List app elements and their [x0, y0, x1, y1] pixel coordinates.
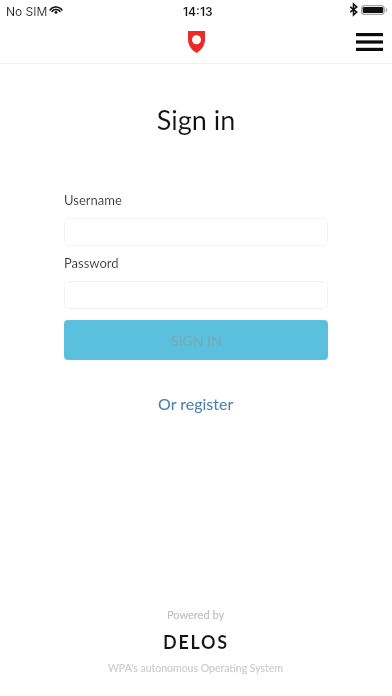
staticText: WPA's autonomous Operating System — [108, 662, 284, 675]
button[interactable]: SIGN IN — [64, 320, 328, 360]
button[interactable]: Open menu — [351, 24, 387, 60]
button[interactable] — [64, 281, 328, 309]
staticText: Sign in — [0, 103, 392, 135]
staticText: Password — [64, 255, 119, 271]
staticText: Powered by — [167, 608, 225, 621]
staticText: SIGN IN — [171, 332, 222, 349]
button[interactable] — [64, 218, 328, 246]
button[interactable]: Or register — [64, 394, 328, 413]
staticText: Username — [64, 192, 122, 208]
staticText: Or register — [158, 394, 234, 413]
staticText: No SIM — [6, 4, 48, 19]
staticText: 14:13 — [183, 4, 213, 19]
staticText: DELOS — [163, 631, 229, 653]
